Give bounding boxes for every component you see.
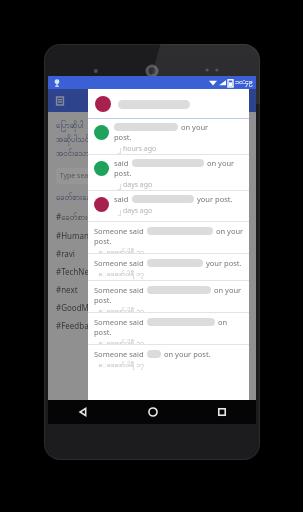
staticText: #Feedback bbox=[56, 320, 97, 331]
staticText: ၁၀:၄၉ bbox=[235, 77, 253, 88]
staticText: on your bbox=[216, 226, 244, 236]
button[interactable]: Type search keyword bbox=[56, 168, 194, 184]
staticText: said bbox=[114, 194, 129, 204]
staticText: Someone said bbox=[94, 317, 144, 327]
button[interactable]: Someone said bbox=[88, 254, 249, 280]
staticText: on your commented bbox=[181, 122, 245, 132]
staticText: said bbox=[114, 158, 129, 168]
staticText: ၂ days ago bbox=[114, 206, 153, 217]
staticText: #next bbox=[56, 284, 78, 295]
staticText: ၂ days ago bbox=[114, 180, 153, 190]
button[interactable]: #TechNews bbox=[56, 264, 248, 278]
button[interactable]: #HumanRights bbox=[56, 228, 248, 242]
button[interactable]: #ခေတ်စားနေသော bbox=[56, 210, 248, 224]
staticText: အဝင်းသော bbox=[56, 148, 90, 160]
staticText: Someone said bbox=[94, 349, 144, 359]
staticText: ၂ hours ago bbox=[114, 144, 157, 154]
button[interactable]: Back bbox=[48, 400, 118, 424]
staticText: your post. bbox=[197, 194, 233, 204]
button[interactable]: said bbox=[88, 191, 249, 221]
staticText: #HumanRights bbox=[56, 230, 113, 241]
staticText: Someone said bbox=[94, 258, 144, 268]
staticText: ခေတ်စားနေသော bbox=[56, 192, 106, 204]
staticText: post. bbox=[94, 295, 112, 305]
staticText: Someone said bbox=[94, 285, 144, 295]
staticText: post. bbox=[94, 327, 112, 337]
staticText: ေဖေဖော်ဝါရီ ၁၇ bbox=[94, 360, 145, 371]
button[interactable]: Home bbox=[118, 400, 187, 424]
button[interactable]: Recents bbox=[187, 400, 256, 424]
staticText: ေဖေဖော်ဝါရီ ၁၇ bbox=[94, 269, 145, 280]
staticText: on your post. bbox=[164, 349, 211, 359]
staticText: Type search keyword bbox=[56, 171, 129, 181]
staticText: on your bbox=[207, 158, 235, 168]
button[interactable]: Someone said bbox=[88, 313, 249, 344]
staticText: post. bbox=[114, 132, 132, 142]
staticText: Someone said bbox=[94, 226, 144, 236]
button[interactable]: #GoodMorning bbox=[56, 300, 248, 314]
button[interactable]: Someone said bbox=[88, 281, 249, 312]
button[interactable] bbox=[88, 89, 249, 118]
staticText: #GoodMorning bbox=[56, 302, 114, 313]
button[interactable]: #Feedback bbox=[56, 318, 248, 332]
staticText: #ravi bbox=[56, 248, 75, 259]
staticText: #ခေတ်စားနေသော bbox=[56, 211, 111, 223]
staticText: ေဖေဖော်ဝါရီ ၁၇ bbox=[94, 247, 145, 253]
button[interactable]: on your commented bbox=[88, 119, 249, 154]
button[interactable]: Someone said bbox=[88, 345, 249, 371]
staticText: on your bbox=[214, 285, 242, 295]
button[interactable]: #next bbox=[56, 282, 248, 296]
staticText: #TechNews bbox=[56, 266, 99, 277]
staticText: post. bbox=[114, 168, 132, 178]
staticText: on your bbox=[218, 317, 245, 327]
button[interactable]: #ravi bbox=[56, 246, 248, 260]
staticText: your post. bbox=[206, 258, 242, 268]
staticText: post. bbox=[94, 236, 112, 246]
staticText: ေဖေဖော်ဝါရီ ၁၇ bbox=[94, 306, 145, 312]
button[interactable]: said bbox=[88, 155, 249, 190]
button[interactable]: Someone said bbox=[88, 222, 249, 253]
staticText: ေဖေဖော်ဝါရီ ၁၇ bbox=[94, 338, 145, 344]
staticText: ပြောဆိုပါ bbox=[56, 120, 84, 132]
staticText: အဆိုပါသင် bbox=[56, 134, 90, 146]
